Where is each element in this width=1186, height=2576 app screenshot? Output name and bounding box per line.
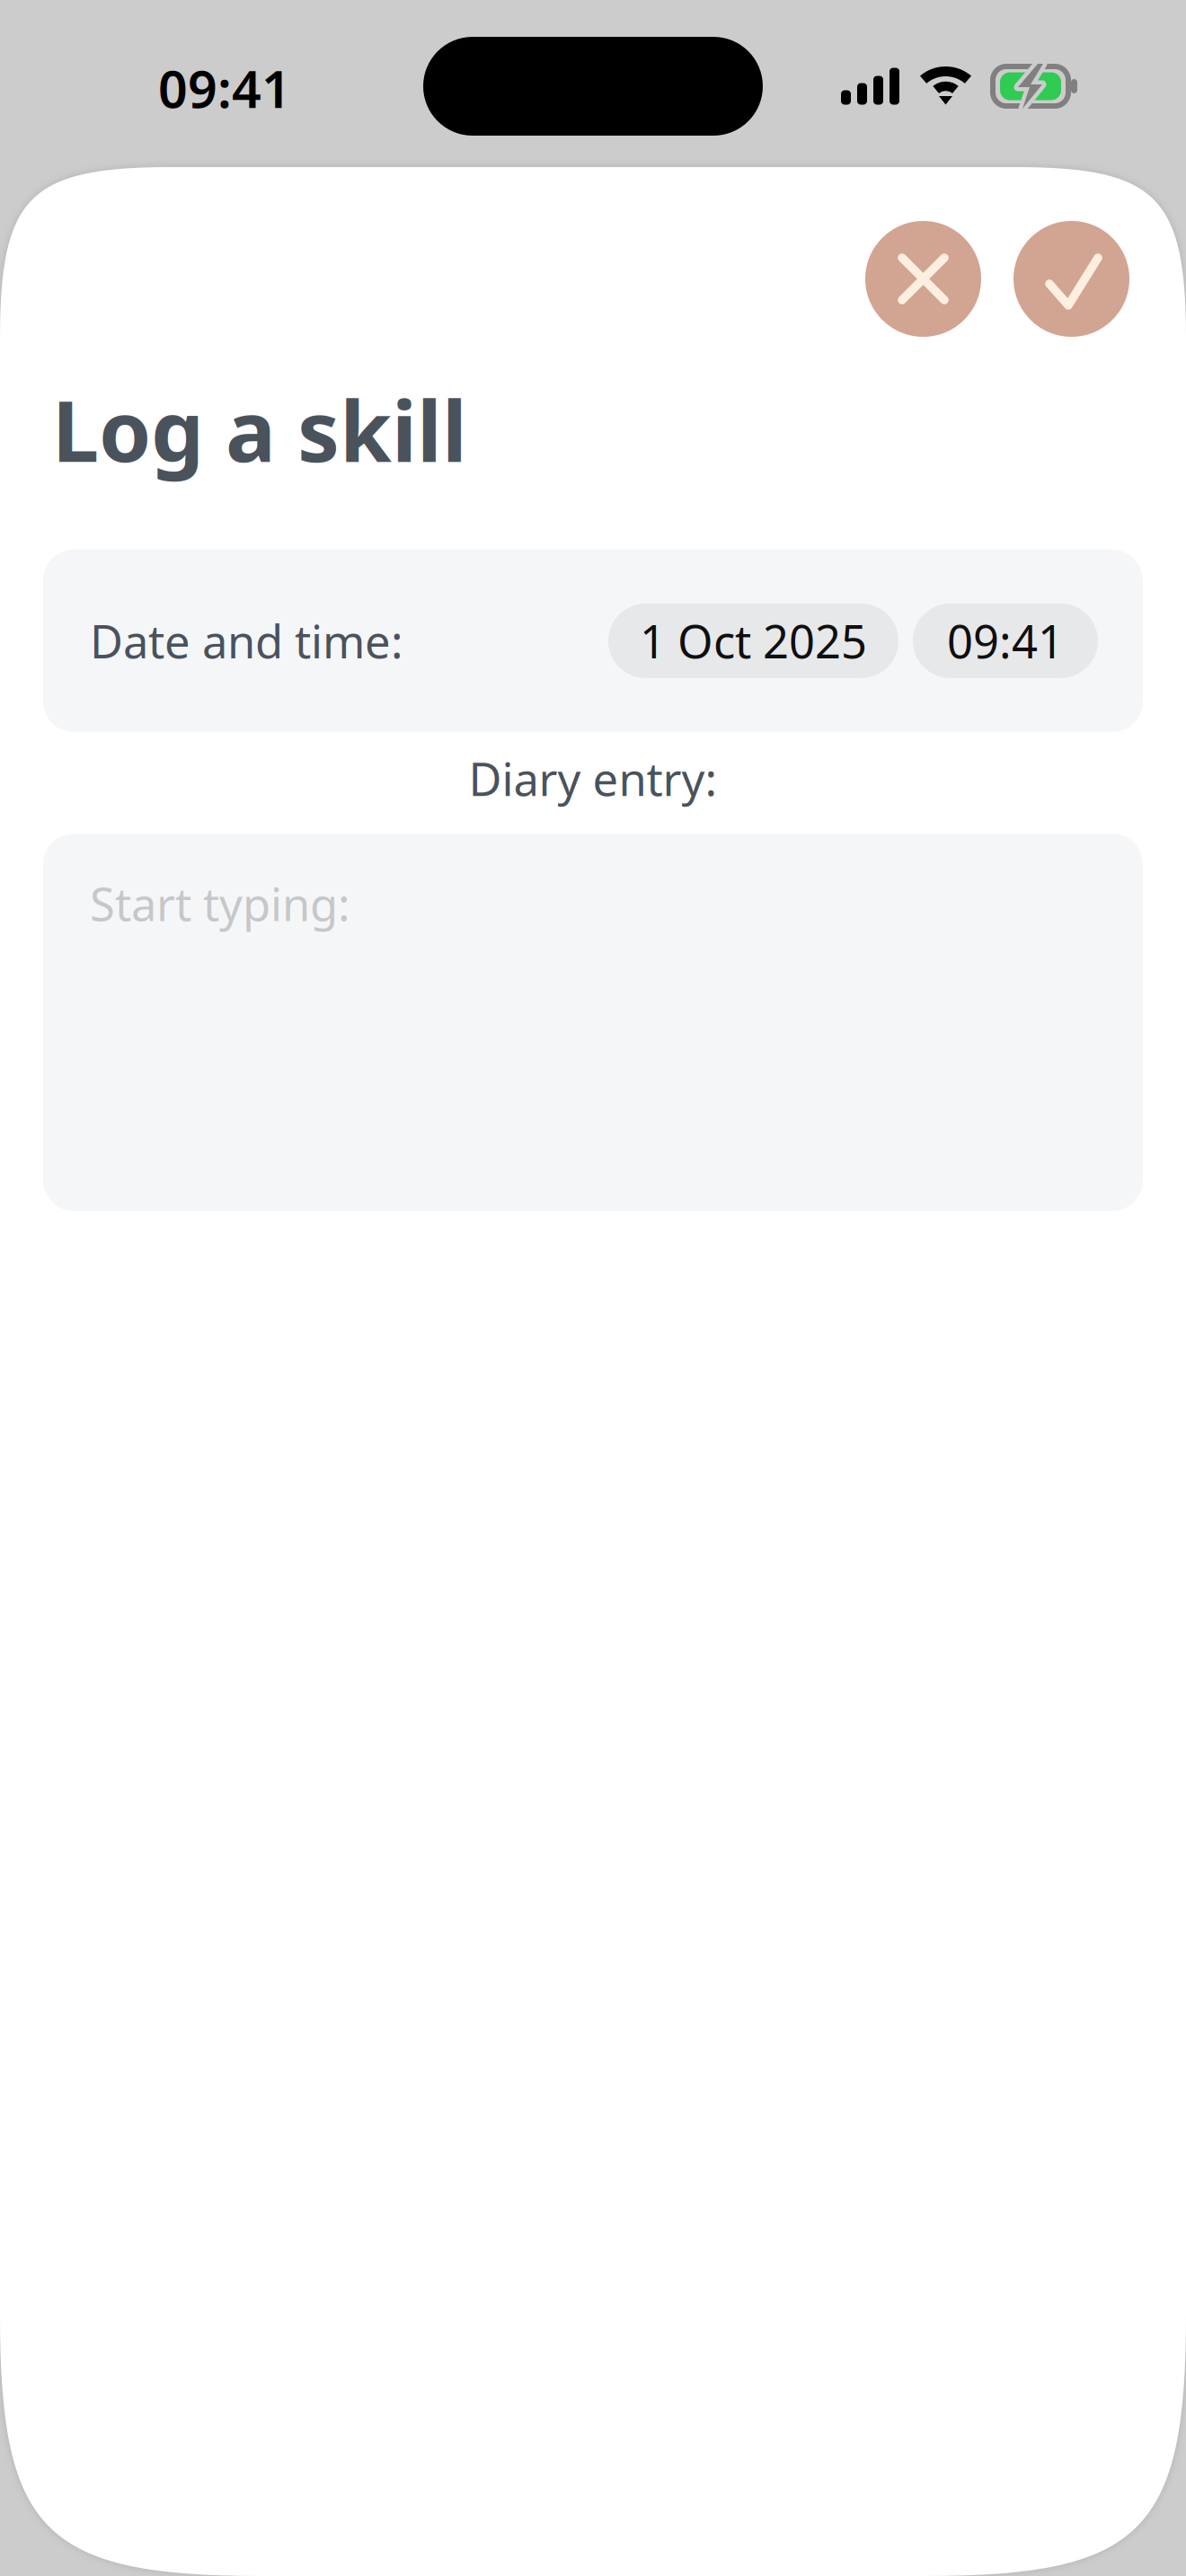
button[interactable]: 09:41 bbox=[913, 603, 1098, 678]
button[interactable]: Cancel bbox=[865, 221, 981, 337]
staticText: Start typing: bbox=[90, 873, 350, 934]
staticText: Log a skill bbox=[52, 374, 467, 485]
staticText: 09:41 bbox=[947, 611, 1064, 671]
button[interactable]: 1 Oct 2025 bbox=[608, 603, 898, 678]
staticText: Diary entry: bbox=[469, 748, 717, 809]
staticText: 09:41 bbox=[158, 54, 291, 122]
button[interactable]: Save bbox=[1013, 221, 1129, 337]
staticText: Date and time: bbox=[90, 611, 403, 671]
staticText: 1 Oct 2025 bbox=[640, 611, 867, 671]
